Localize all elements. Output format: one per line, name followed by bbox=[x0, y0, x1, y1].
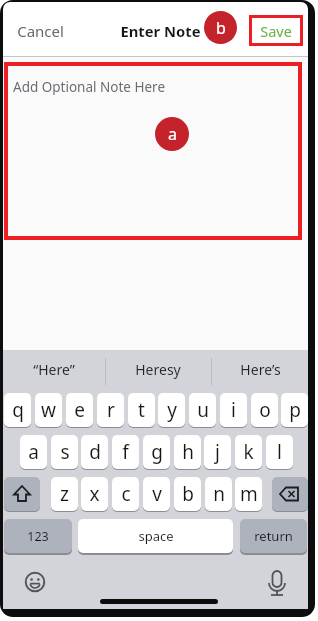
staticText: x bbox=[89, 481, 100, 507]
staticText: Here’s bbox=[240, 360, 281, 379]
button[interactable] bbox=[272, 477, 308, 511]
button[interactable]: k bbox=[235, 435, 262, 469]
button[interactable]: e bbox=[66, 393, 93, 427]
button[interactable]: Heresy bbox=[118, 359, 198, 380]
staticText: w bbox=[41, 397, 56, 423]
button[interactable]: c bbox=[112, 477, 139, 511]
button[interactable]: z bbox=[51, 477, 78, 511]
button[interactable]: p bbox=[281, 393, 308, 427]
button[interactable]: x bbox=[81, 477, 108, 511]
staticText: i bbox=[231, 397, 236, 423]
button[interactable]: Here’s bbox=[220, 359, 300, 380]
button[interactable]: “Here” bbox=[14, 359, 94, 380]
button[interactable]: Cancel bbox=[17, 20, 77, 41]
staticText: y bbox=[167, 397, 177, 423]
button[interactable]: n bbox=[205, 477, 232, 511]
staticText: 123 bbox=[27, 528, 49, 545]
staticText: Save bbox=[260, 21, 292, 41]
button[interactable] bbox=[4, 477, 40, 511]
button[interactable]: o bbox=[251, 393, 278, 427]
staticText: p bbox=[289, 397, 301, 423]
staticText: Add Optional Note Here bbox=[13, 78, 165, 95]
button[interactable]: f bbox=[112, 435, 139, 469]
button[interactable]: j bbox=[204, 435, 231, 469]
button[interactable]: space bbox=[78, 519, 233, 553]
staticText: t bbox=[138, 397, 145, 423]
button[interactable]: t bbox=[128, 393, 155, 427]
staticText: v bbox=[152, 481, 162, 507]
staticText: a bbox=[168, 123, 177, 145]
staticText: k bbox=[243, 439, 254, 465]
staticText: u bbox=[197, 397, 209, 423]
staticText: a bbox=[28, 439, 39, 465]
staticText: o bbox=[259, 397, 271, 423]
staticText: “Here” bbox=[33, 360, 75, 379]
staticText: j bbox=[215, 439, 220, 465]
staticText: r bbox=[107, 397, 115, 423]
staticText: s bbox=[60, 439, 70, 465]
button[interactable]: r bbox=[97, 393, 124, 427]
button[interactable]: Save bbox=[249, 15, 303, 46]
button[interactable]: d bbox=[81, 435, 108, 469]
button[interactable]: b bbox=[174, 477, 201, 511]
staticText: b bbox=[216, 17, 226, 39]
button[interactable]: return bbox=[240, 519, 307, 553]
staticText: d bbox=[89, 439, 101, 465]
staticText: m bbox=[240, 481, 258, 507]
button[interactable]: w bbox=[35, 393, 62, 427]
staticText: Heresy bbox=[135, 360, 181, 379]
button[interactable] bbox=[4, 62, 302, 240]
staticText: f bbox=[122, 439, 129, 465]
button[interactable]: q bbox=[4, 393, 31, 427]
staticText: l bbox=[277, 439, 282, 465]
button[interactable]: a bbox=[20, 435, 47, 469]
button[interactable]: 123 bbox=[4, 519, 72, 553]
button[interactable] bbox=[20, 567, 50, 597]
staticText: b bbox=[182, 481, 194, 507]
staticText: e bbox=[74, 397, 85, 423]
staticText: Enter Note bbox=[120, 21, 201, 41]
button[interactable]: i bbox=[220, 393, 247, 427]
staticText: return bbox=[254, 527, 293, 545]
staticText: n bbox=[213, 481, 225, 507]
button[interactable]: l bbox=[266, 435, 293, 469]
staticText: z bbox=[60, 481, 69, 507]
button[interactable]: g bbox=[143, 435, 170, 469]
button[interactable]: v bbox=[143, 477, 170, 511]
staticText: c bbox=[121, 481, 131, 507]
staticText: q bbox=[12, 397, 24, 423]
staticText: space bbox=[138, 527, 174, 545]
staticText: h bbox=[182, 439, 194, 465]
button[interactable]: h bbox=[174, 435, 201, 469]
button[interactable]: s bbox=[51, 435, 78, 469]
button[interactable]: y bbox=[158, 393, 185, 427]
button[interactable]: m bbox=[235, 477, 262, 511]
button[interactable] bbox=[262, 567, 292, 597]
button[interactable]: u bbox=[189, 393, 216, 427]
staticText: g bbox=[151, 439, 163, 465]
staticText: Cancel bbox=[17, 21, 64, 41]
